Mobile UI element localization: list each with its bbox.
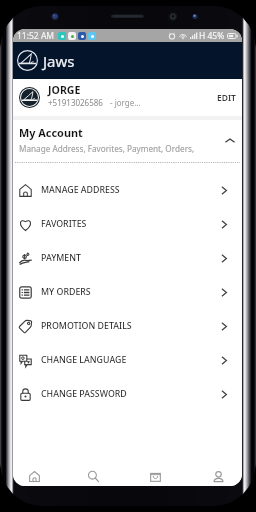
staticText: - jorge... <box>110 97 141 108</box>
button[interactable]: Profile <box>203 461 233 486</box>
staticText: H 45% <box>199 30 225 42</box>
staticText: Manage Address, Favorites, Payment, Orde… <box>19 143 195 154</box>
staticText: EDIT <box>217 92 236 104</box>
button[interactable]: CHANGE LANGUAGE <box>13 343 242 377</box>
staticText: +51913026586 <box>48 97 103 108</box>
button[interactable]: Cart <box>140 461 170 486</box>
button[interactable]: MY ORDERS <box>13 275 242 309</box>
button[interactable]: Search <box>78 461 108 486</box>
button[interactable]: PROMOTION DETAILS <box>13 309 242 343</box>
button[interactable]: FAVORITES <box>13 207 242 241</box>
staticText: MY ORDERS <box>41 286 91 298</box>
staticText: PROMOTION DETAILS <box>41 320 132 332</box>
staticText: Jaws <box>43 51 75 71</box>
button[interactable]: My Account <box>13 120 242 162</box>
staticText: CHANGE LANGUAGE <box>41 354 127 366</box>
button[interactable]: JORGE <box>13 79 242 116</box>
button[interactable]: Home <box>19 461 49 486</box>
staticText: My Account <box>19 125 83 140</box>
staticText: MANAGE ADDRESS <box>41 184 120 196</box>
staticText: 11:52 AM <box>17 30 55 42</box>
staticText: PAYMENT <box>41 252 82 264</box>
staticText: JORGE <box>48 83 81 97</box>
button[interactable]: MANAGE ADDRESS <box>13 173 242 207</box>
staticText: CHANGE PASSWORD <box>41 388 127 400</box>
button[interactable]: CHANGE PASSWORD <box>13 377 242 411</box>
staticText: FAVORITES <box>41 218 87 230</box>
button[interactable]: PAYMENT <box>13 241 242 275</box>
